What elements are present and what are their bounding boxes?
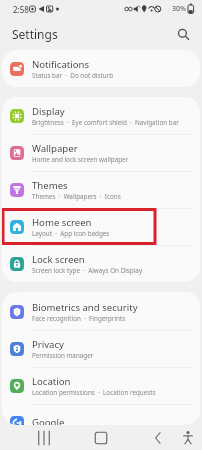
button[interactable]: Privacy [2,330,200,367]
button[interactable]: Recents [32,426,56,450]
staticText: 2:58 [13,4,29,15]
staticText: Face recognition · Fingerprints [32,314,126,323]
staticText: Google [32,416,65,425]
button[interactable]: Home screen [2,208,200,245]
staticText: Themes [32,179,68,192]
staticText: Brightness · Eye comfort shield · Naviga… [32,118,179,127]
button[interactable]: Accessibility [176,426,200,450]
button[interactable]: Biometrics and security [2,293,200,330]
button[interactable]: Back [146,426,170,450]
button[interactable]: Notifications [2,50,200,87]
staticText: Location permissions · Location requests [32,388,156,397]
button[interactable]: Themes [2,171,200,208]
staticText: 30% [172,4,186,14]
staticText: Privacy [32,338,64,351]
staticText: Status bar · Do not disturb [32,71,114,80]
staticText: Location [32,375,71,388]
staticText: Display [32,105,65,118]
staticText: Home screen [32,216,92,229]
button[interactable]: Google [2,404,200,425]
staticText: Biometrics and security [32,301,138,314]
staticText: Notifications [32,58,90,71]
staticText: Settings [12,26,58,42]
button[interactable]: Home [89,426,113,450]
staticText: Wallpaper [32,142,78,155]
staticText: Layout · App icon badges [32,229,110,238]
staticText: Lock screen [32,253,85,266]
staticText: Home and lock screen wallpaper [32,155,129,164]
button[interactable]: Location [2,367,200,404]
button[interactable]: Search [171,22,195,46]
button[interactable]: Wallpaper [2,134,200,171]
staticText: Permission manager [32,351,94,360]
button[interactable]: Display [2,97,200,134]
staticText: Themes · Wallpapers · Icons [32,192,121,201]
button[interactable]: Lock screen [2,245,200,282]
staticText: Screen lock type · Always On Display [32,266,143,275]
